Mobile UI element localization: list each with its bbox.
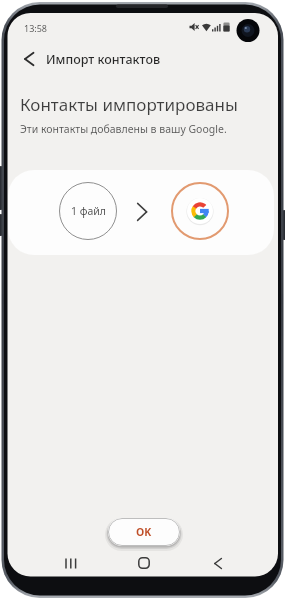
staticText: 13:58 <box>24 22 48 34</box>
staticText: Эти контакты добавлены в вашу Google. <box>20 122 227 136</box>
staticText: Контакты импортированы <box>20 93 238 116</box>
staticText: Импорт контактов <box>46 51 161 68</box>
button[interactable] <box>131 550 157 576</box>
button[interactable] <box>58 550 84 576</box>
button[interactable] <box>205 550 231 576</box>
button[interactable]: OK <box>108 518 180 546</box>
staticText: 1 файл <box>71 204 106 218</box>
button[interactable] <box>14 44 44 74</box>
staticText: OK <box>136 525 152 539</box>
